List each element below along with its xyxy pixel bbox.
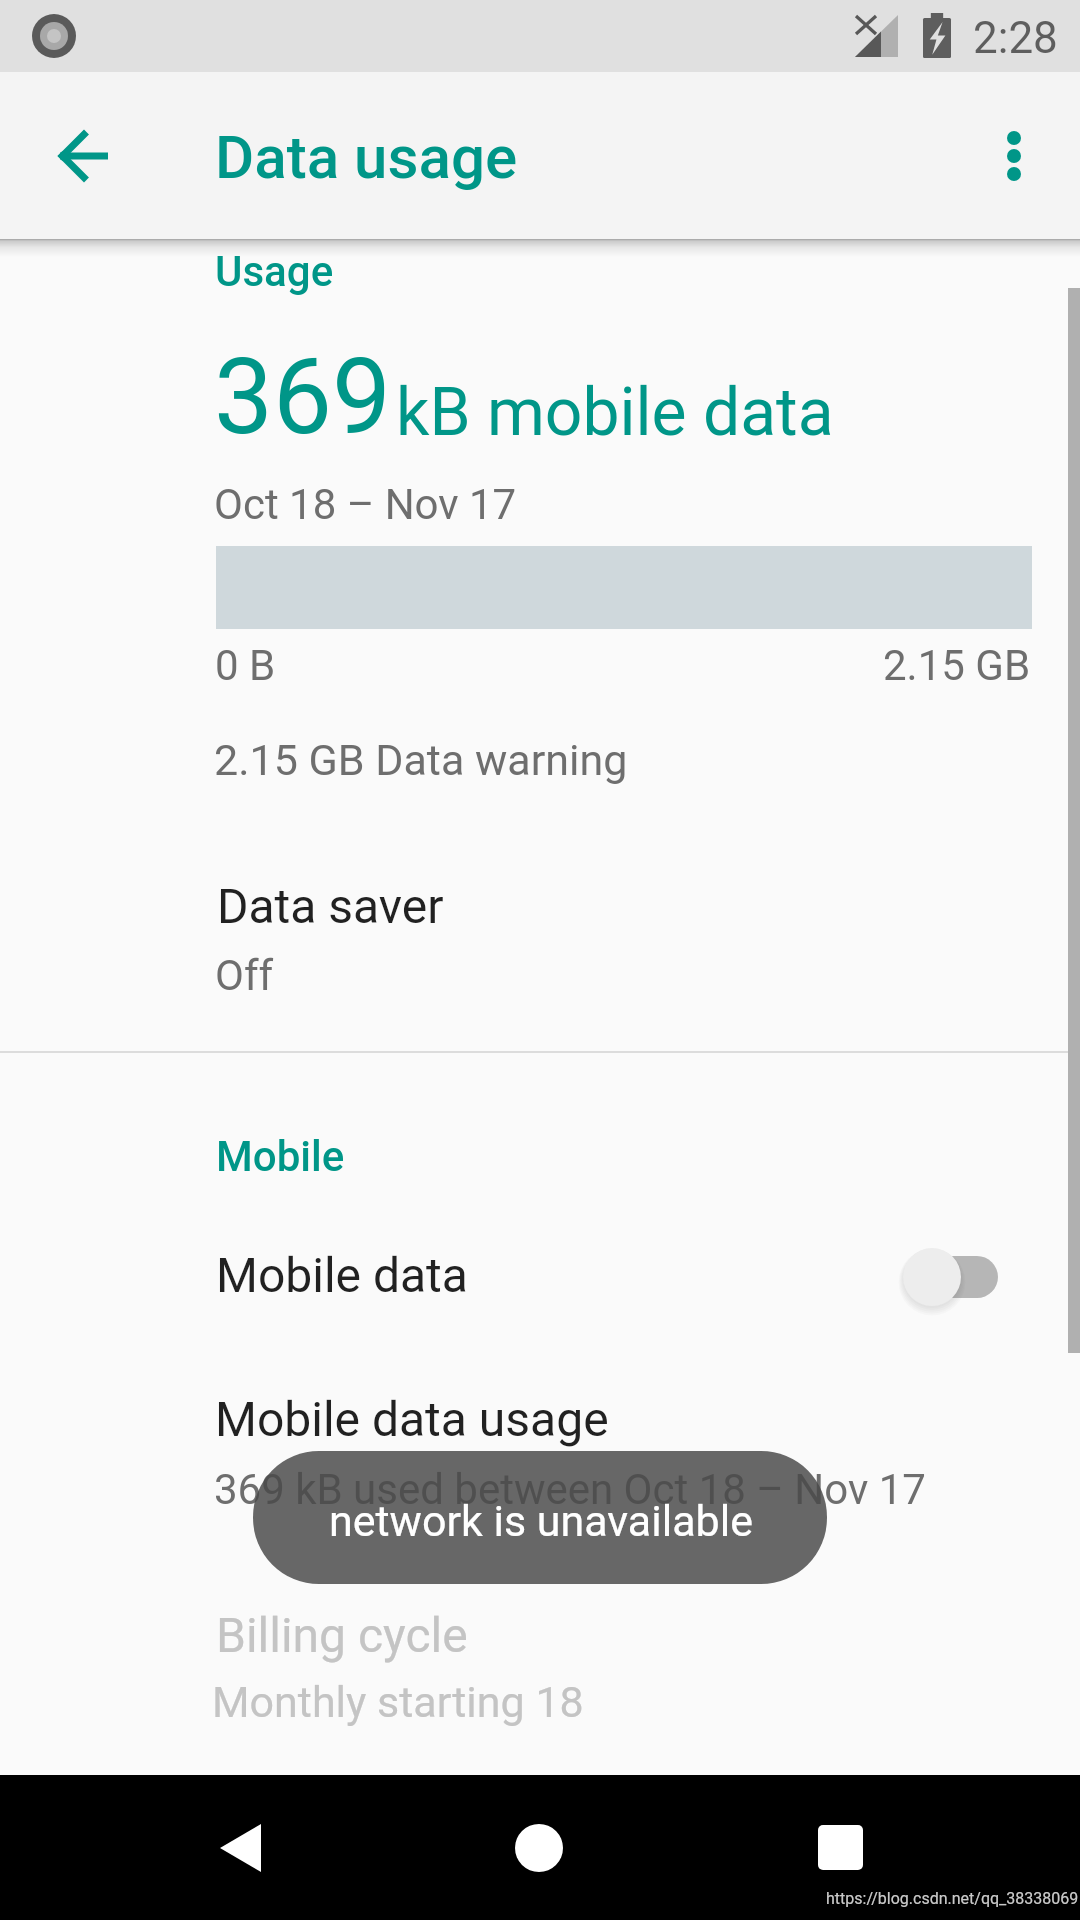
button[interactable]: Back [180,1775,300,1920]
button[interactable] [0,1225,1080,1335]
button[interactable]: Home [480,1775,600,1920]
staticText: network is unavailable [329,1496,753,1546]
staticText: Data usage [215,122,518,192]
staticText: Off [215,951,274,1000]
staticText: Mobile [216,1132,345,1181]
staticText: 2.15 GB Data warning [214,735,628,785]
staticText: Mobile data usage [215,1391,609,1447]
button[interactable]: Recent apps [780,1775,900,1920]
staticText: Usage [215,247,334,296]
staticText: Oct 18 – Nov 17 [214,480,517,529]
staticText: Monthly starting 18 [212,1677,584,1727]
staticText: Billing cycle [216,1607,468,1663]
button[interactable] [0,855,1080,1015]
staticText: 0 B [215,641,276,690]
staticText: Mobile data [216,1247,468,1303]
button[interactable] [0,1380,1080,1530]
staticText: 2:28 [973,12,1058,64]
staticText: https://blog.csdn.net/qq_38338069 [826,1889,1079,1908]
staticText: 2.15 GB [883,641,1031,690]
staticText: Data saver [217,878,444,934]
staticText: kB mobile data [396,374,834,451]
staticText: 369 [214,336,392,459]
staticText: 369 kB used between Oct 18 – Nov 17 [214,1465,926,1514]
button[interactable]: More options [966,108,1062,204]
button[interactable]: Navigate up [36,108,132,204]
